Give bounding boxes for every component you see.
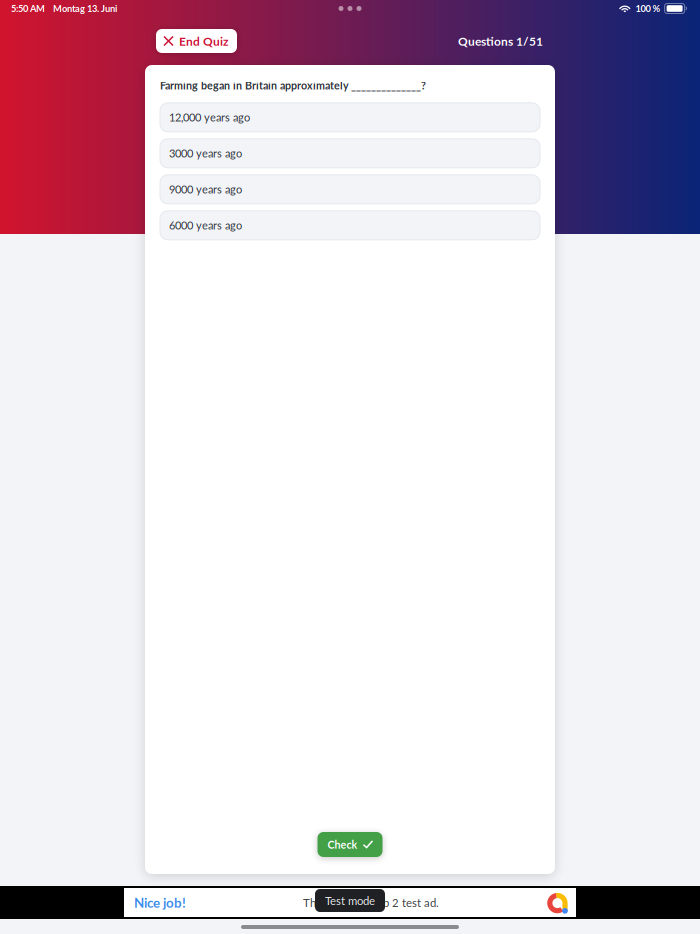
staticText: Nice job! [134,894,186,910]
button[interactable]: 9000 years ago [160,175,540,204]
staticText: Montag 13. Juni [53,3,117,14]
staticText: 3000 years ago [169,147,242,160]
staticText: Farming began in Britain approximately _… [160,79,426,92]
staticText: Test mode [325,894,375,907]
staticText: 100 % [636,3,661,14]
staticText: 9000 years ago [169,183,242,196]
button[interactable]: Nice job! [124,888,576,917]
staticText: 6000 years ago [169,219,242,232]
button[interactable]: End Quiz [156,29,237,53]
staticText: End Quiz [179,34,229,48]
button[interactable]: 3000 years ago [160,139,540,168]
staticText: 12,000 years ago [169,111,250,124]
staticText: Questions 1/51 [458,34,543,48]
button[interactable]: 6000 years ago [160,211,540,240]
staticText: 5:50 AM [11,3,45,14]
button[interactable]: 12,000 years ago [160,103,540,132]
button[interactable]: Check [317,832,382,857]
staticText: This is an AdMob 2 test ad. [303,896,439,909]
staticText: Check [327,838,357,851]
